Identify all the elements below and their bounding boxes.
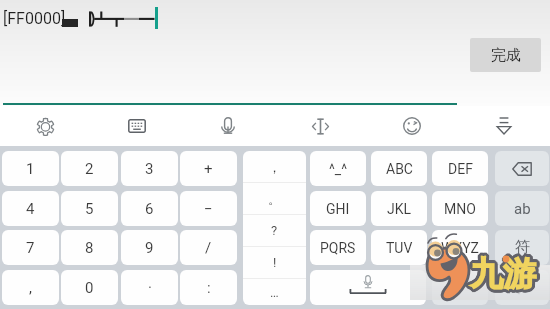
staticText: ! <box>273 255 277 270</box>
staticText: JKL <box>387 201 412 217</box>
staticText: 完成 <box>491 46 521 65</box>
button[interactable]: … <box>243 279 306 305</box>
button[interactable]: 4 <box>2 191 59 226</box>
button[interactable]: 。 <box>243 183 306 214</box>
staticText: 符 <box>515 238 530 257</box>
button[interactable]: ab <box>495 191 549 226</box>
staticText: ， <box>268 159 281 175</box>
staticText: 2 <box>85 160 94 178</box>
button[interactable]: 3 <box>121 151 178 186</box>
button[interactable]: , <box>2 270 59 305</box>
button[interactable]: 6 <box>121 191 178 226</box>
staticText: 1 <box>26 160 35 178</box>
staticText: ? <box>271 223 278 238</box>
button[interactable]: PQRS <box>310 230 366 265</box>
button[interactable]: DEF <box>432 151 488 186</box>
staticText: PQRS <box>320 240 356 256</box>
button[interactable]: · <box>121 270 178 305</box>
staticText: 3 <box>145 160 154 178</box>
staticText: 4 <box>26 200 35 218</box>
staticText: ABC <box>386 161 413 177</box>
button[interactable]: Move cursor <box>274 106 366 146</box>
button[interactable]: ^_^ <box>310 151 366 186</box>
button[interactable]: MNO <box>432 191 488 226</box>
staticText: 6 <box>145 200 154 218</box>
button[interactable]: Switch keyboard <box>91 106 182 146</box>
staticText: … <box>270 285 279 300</box>
button[interactable]: Settings <box>0 106 91 146</box>
staticText: − <box>204 200 213 218</box>
button[interactable]: Enter <box>495 270 549 305</box>
button[interactable]: WXYZ <box>432 230 488 265</box>
staticText: 7 <box>26 239 35 257</box>
button[interactable]: 符 <box>495 230 549 265</box>
button[interactable]: JKL <box>371 191 427 226</box>
button[interactable]: 1 <box>2 151 59 186</box>
button[interactable]: Hide keyboard <box>458 106 550 146</box>
staticText: 0 <box>85 279 94 297</box>
button[interactable]: 0 <box>61 270 118 305</box>
staticText: GHI <box>326 201 350 217</box>
button[interactable]: ! <box>243 247 306 278</box>
staticText: [FF0000] <box>3 9 66 28</box>
button[interactable]: 8 <box>61 230 118 265</box>
staticText: 5 <box>85 200 94 218</box>
button[interactable]: + <box>180 151 237 186</box>
button[interactable]: 7 <box>2 230 59 265</box>
button[interactable]: 5 <box>61 191 118 226</box>
staticText: 。 <box>268 191 281 207</box>
staticText: · <box>148 279 152 297</box>
button[interactable]: TUV <box>371 230 427 265</box>
staticText: / <box>205 239 212 257</box>
button[interactable]: GHI <box>310 191 366 226</box>
button[interactable] <box>432 270 488 305</box>
button[interactable]: Space <box>310 270 426 305</box>
button[interactable]: ? <box>243 215 306 246</box>
button[interactable]: Emoji <box>366 106 458 146</box>
staticText: TUV <box>386 240 413 256</box>
button[interactable]: ， <box>243 151 306 182</box>
staticText: 8 <box>85 239 94 257</box>
staticText: ab <box>514 200 531 218</box>
staticText: WXYZ <box>441 240 479 256</box>
button[interactable]: / <box>180 230 237 265</box>
button[interactable]: Backspace <box>495 151 549 186</box>
staticText: DEF <box>448 161 473 177</box>
button[interactable]: − <box>180 191 237 226</box>
staticText: , <box>29 279 32 297</box>
staticText: MNO <box>444 201 476 217</box>
button[interactable]: 9 <box>121 230 178 265</box>
staticText: : <box>207 279 211 297</box>
button[interactable]: Voice input <box>182 106 274 146</box>
button[interactable]: 2 <box>61 151 118 186</box>
staticText: 9 <box>145 239 154 257</box>
button[interactable]: : <box>180 270 237 305</box>
button[interactable]: ABC <box>371 151 427 186</box>
staticText: + <box>204 160 213 178</box>
staticText: ^_^ <box>329 161 348 177</box>
button[interactable]: 完成 <box>470 38 541 72</box>
